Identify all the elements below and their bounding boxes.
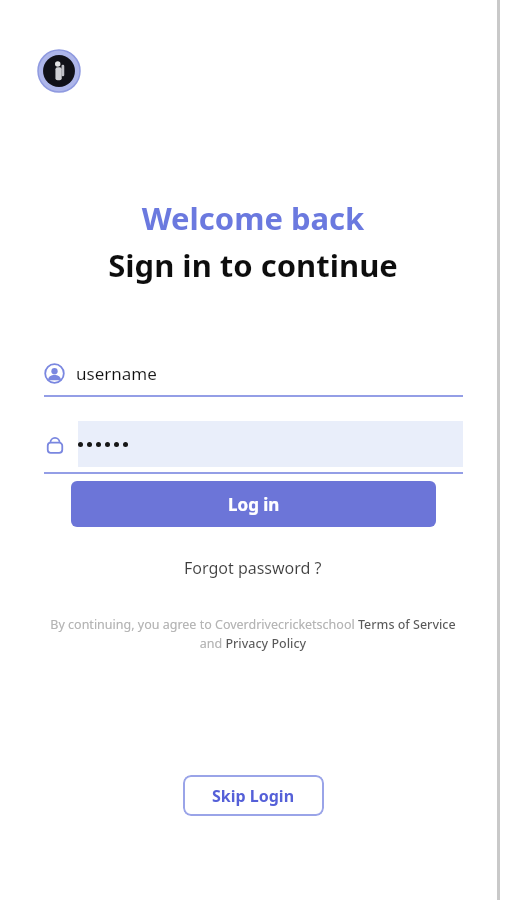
staticText: Skip Login [212,785,295,807]
button[interactable]: Log in [71,481,436,527]
button[interactable]: Skip Login [183,775,324,816]
staticText: username [76,362,157,385]
staticText: Welcome back [0,197,506,239]
button[interactable]: username [44,350,463,396]
staticText: Forgot password ? [184,557,322,579]
other: App logo [38,50,80,92]
button[interactable]: Forgot password ? [172,552,334,584]
staticText: Sign in to continue [0,244,506,286]
button[interactable]: By continuing, you agree to Coverdrivecr… [45,616,461,652]
button[interactable] [44,421,463,467]
staticText: Log in [228,493,280,516]
